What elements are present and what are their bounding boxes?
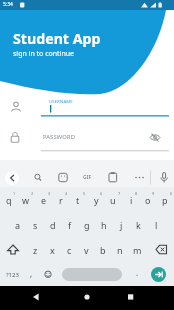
staticText: USERNAME [49,99,73,105]
button[interactable]: x [44,242,60,258]
button[interactable] [151,267,166,282]
button[interactable]: p [157,192,173,208]
staticText: sign in to continue [13,49,74,59]
staticText: 9 [152,191,155,196]
staticText: x [50,244,55,256]
button[interactable]: c [61,242,77,258]
button[interactable]: , [23,265,39,281]
button[interactable]: . [129,264,145,280]
button[interactable]: w [18,192,34,208]
button[interactable] [8,128,174,152]
button[interactable] [77,288,97,306]
button[interactable]: t [70,192,86,208]
button[interactable]: d [45,217,61,233]
staticText: z [33,244,38,256]
staticText: b [100,244,106,256]
button[interactable]: s [27,217,43,233]
button[interactable] [26,288,46,306]
staticText: , [30,268,33,279]
staticText: d [50,219,56,231]
staticText: 3 [48,191,51,196]
button[interactable]: f [62,217,78,233]
staticText: w [22,194,30,206]
button[interactable]: r [53,192,69,208]
staticText: m [133,244,142,256]
staticText: f [68,219,72,231]
staticText: o [145,194,151,206]
staticText: 2 [31,191,34,196]
button[interactable] [8,96,174,120]
staticText: 8 [135,191,138,196]
staticText: 6 [100,191,103,196]
button[interactable]: l [148,217,164,233]
staticText: . [136,267,139,278]
staticText: 1 [13,191,16,196]
button[interactable]: g [79,217,95,233]
button[interactable]: u [105,192,121,208]
button[interactable]: ?123 [2,267,22,282]
staticText: ?123 [6,271,19,279]
staticText: e [41,194,47,206]
button[interactable]: e [36,192,52,208]
button[interactable]: n [112,242,128,258]
staticText: i [130,194,133,206]
staticText: Student App [13,29,101,48]
staticText: 5:34 [3,1,13,8]
staticText: PASSWORD [43,133,75,141]
staticText: v [84,244,89,256]
staticText: q [6,194,12,206]
staticText: t [76,194,80,206]
button[interactable]: q [1,192,17,208]
staticText: y [94,194,99,206]
button[interactable]: m [129,242,145,258]
staticText: c [67,244,72,256]
button[interactable]: z [27,242,43,258]
button[interactable]: j [113,217,129,233]
button[interactable] [62,268,122,281]
staticText: 0 [170,191,173,196]
staticText: s [33,219,38,231]
staticText: h [101,219,107,231]
staticText: a [15,219,21,231]
button[interactable] [5,171,19,185]
button[interactable]: b [95,242,111,258]
staticText: n [117,244,123,256]
button[interactable]: k [130,217,146,233]
button[interactable]: v [78,242,94,258]
button[interactable] [119,288,139,306]
staticText: 4 [65,191,68,196]
button[interactable]: y [88,192,104,208]
button[interactable]: i [123,192,139,208]
button[interactable]: h [96,217,112,233]
staticText: p [162,194,168,206]
staticText: k [136,219,141,231]
staticText: l [155,219,158,231]
staticText: GIF [83,174,92,181]
staticText: u [110,194,116,206]
staticText: g [84,219,90,231]
staticText: 5 [83,191,86,196]
button[interactable]: o [140,192,156,208]
staticText: r [59,194,63,206]
staticText: j [120,219,123,231]
staticText: 7 [118,191,121,196]
button[interactable]: a [10,217,26,233]
